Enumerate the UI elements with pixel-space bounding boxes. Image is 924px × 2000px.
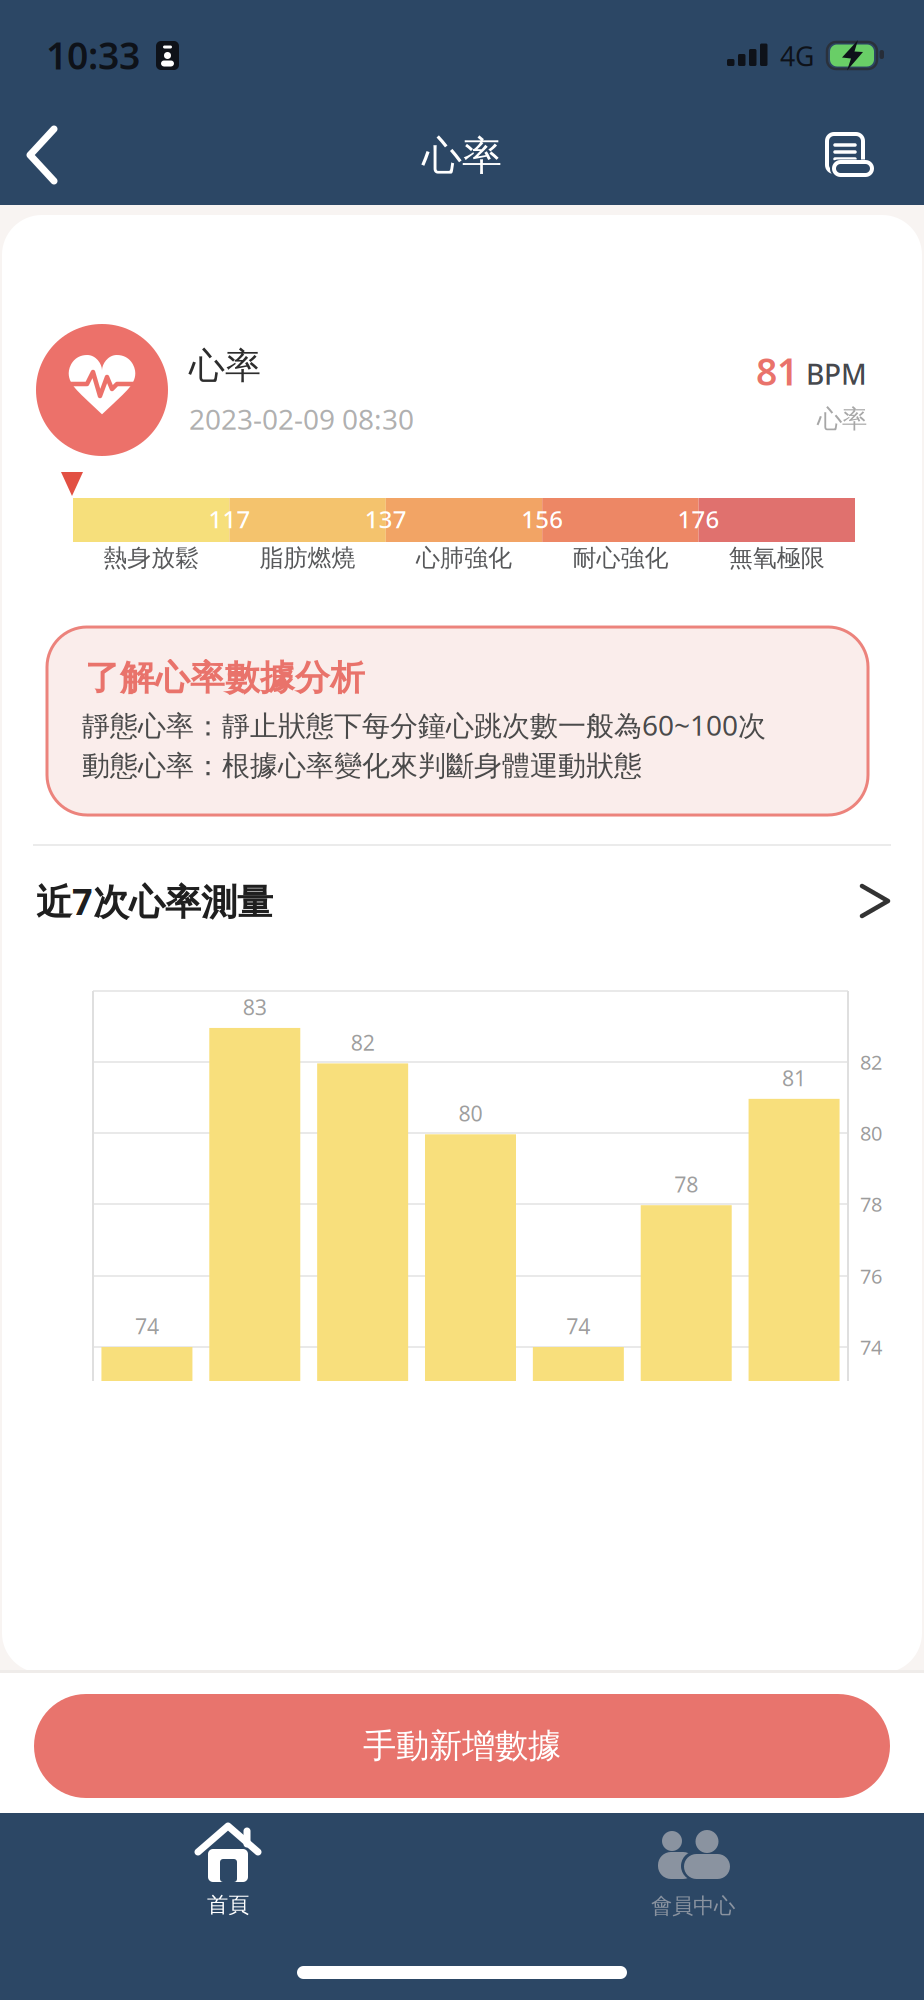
staticText: BPM: [806, 355, 867, 393]
button[interactable]: 會員中心: [578, 1812, 808, 1932]
staticText: 心率: [817, 403, 867, 434]
button[interactable]: 近7次心率測量: [33, 872, 891, 930]
staticText: 脂肪燃燒: [260, 543, 356, 573]
staticText: 78: [860, 1191, 882, 1217]
staticText: 137: [365, 503, 407, 535]
staticText: 74: [566, 1312, 590, 1340]
staticText: 82: [860, 1049, 882, 1075]
staticText: 10:33: [46, 30, 140, 80]
staticText: 78: [674, 1170, 698, 1198]
staticText: 無氧極限: [729, 543, 825, 573]
staticText: 74: [860, 1334, 882, 1360]
staticText: 了解心率數據分析: [85, 657, 365, 699]
button[interactable]: Back: [18, 120, 74, 190]
staticText: 80: [860, 1120, 882, 1146]
staticText: 2023-02-09 08:30: [189, 400, 414, 438]
staticText: 80: [458, 1099, 482, 1127]
button[interactable]: Records: [815, 124, 879, 188]
button[interactable]: 手動新增數據: [34, 1694, 890, 1798]
staticText: 4G: [780, 38, 814, 74]
staticText: 117: [208, 503, 250, 535]
staticText: 81: [756, 346, 798, 396]
staticText: 會員中心: [651, 1893, 735, 1919]
staticText: 心率: [189, 344, 261, 388]
staticText: 耐心強化: [572, 543, 668, 573]
staticText: 首頁: [207, 1892, 249, 1918]
staticText: 動態心率：根據心率變化來判斷身體運動狀態: [82, 749, 642, 783]
button[interactable]: 首頁: [113, 1812, 343, 1932]
staticText: 81: [782, 1064, 806, 1092]
staticText: 靜態心率：靜止狀態下每分鐘心跳次數一般為60~100次: [82, 706, 766, 744]
staticText: 近7次心率測量: [36, 877, 273, 925]
staticText: 手動新增數據: [363, 1725, 561, 1766]
staticText: 82: [351, 1028, 375, 1056]
staticText: 76: [860, 1263, 882, 1289]
staticText: 熱身放鬆: [103, 543, 199, 573]
staticText: 176: [678, 503, 720, 535]
staticText: 83: [243, 993, 267, 1021]
staticText: 156: [521, 503, 563, 535]
staticText: 74: [135, 1312, 159, 1340]
staticText: 心肺強化: [416, 543, 512, 573]
staticText: 心率: [422, 131, 502, 180]
